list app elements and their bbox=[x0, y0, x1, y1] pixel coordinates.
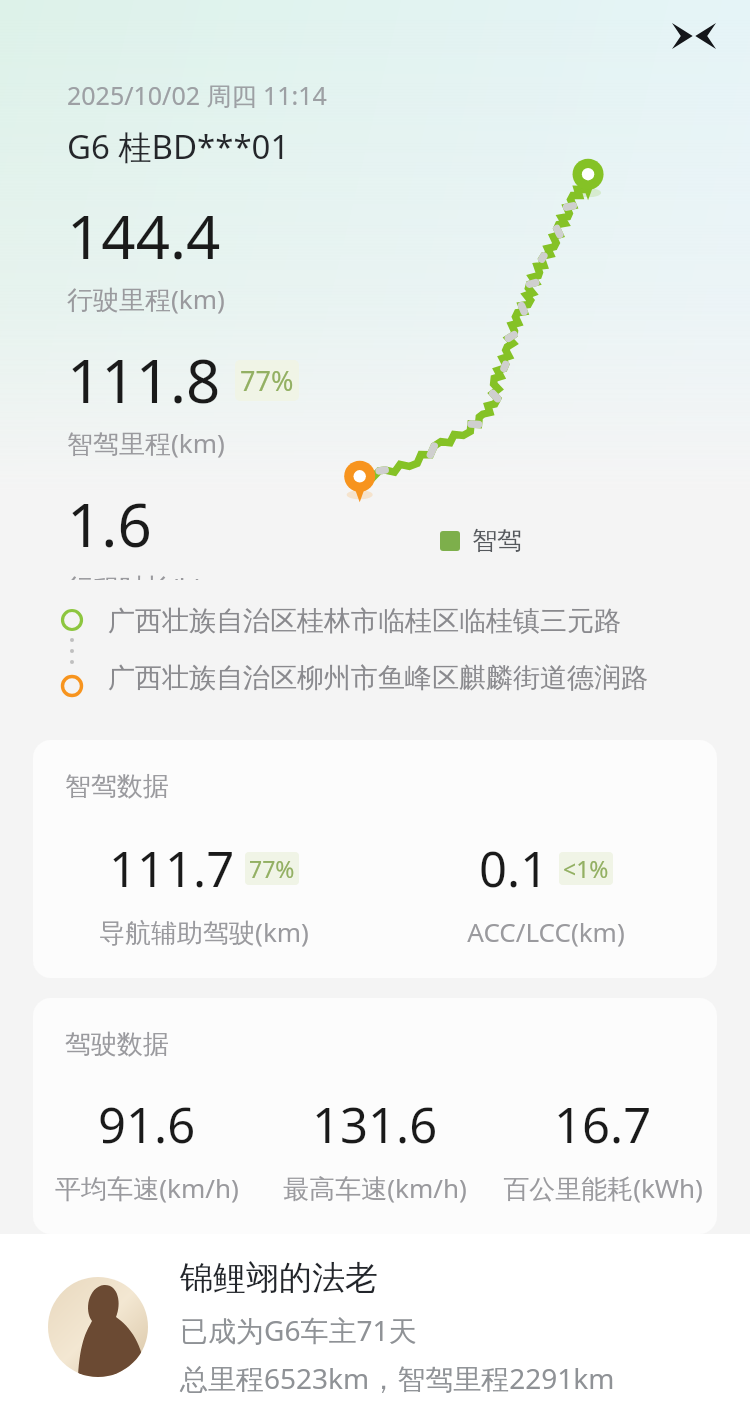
staticText: ACC/LCC(km) bbox=[467, 914, 625, 949]
staticText: 77% bbox=[240, 362, 294, 399]
button[interactable]: XPeng logo bbox=[666, 8, 722, 64]
staticText: 16.7 bbox=[554, 1091, 652, 1158]
button[interactable]: 驾驶数据 bbox=[33, 998, 717, 1234]
button[interactable]: 锦鲤翊的法老 bbox=[0, 1234, 750, 1420]
staticText: 总里程6523km，智驾里程2291km bbox=[180, 1359, 615, 1397]
staticText: 行驶里程(km) bbox=[67, 281, 225, 317]
staticText: 导航辅助驾驶(km) bbox=[99, 914, 309, 950]
staticText: 131.6 bbox=[312, 1091, 438, 1158]
staticText: 百公里能耗(kWh) bbox=[503, 1170, 703, 1206]
staticText: <1% bbox=[563, 853, 609, 884]
staticText: 1.6 bbox=[67, 483, 152, 565]
staticText: 锦鲤翊的法老 bbox=[180, 1257, 378, 1299]
staticText: 最高车速(km/h) bbox=[283, 1170, 467, 1206]
staticText: 广西壮族自治区桂林市临桂区临桂镇三元路 bbox=[108, 604, 621, 638]
staticText: 77% bbox=[249, 853, 295, 884]
staticText: 智驾数据 bbox=[65, 770, 169, 803]
button[interactable]: 智驾数据 bbox=[33, 740, 717, 978]
staticText: G6 桂BD***01 bbox=[67, 124, 290, 169]
staticText: 111.7 bbox=[109, 835, 235, 902]
staticText: 0.1 bbox=[479, 835, 549, 902]
staticText: 行程时长(h) bbox=[67, 569, 203, 580]
staticText: 144.4 bbox=[67, 195, 221, 277]
staticText: 91.6 bbox=[98, 1091, 196, 1158]
staticText: 智驾里程(km) bbox=[67, 425, 225, 461]
staticText: 2025/10/02 周四 11:14 bbox=[67, 78, 327, 112]
staticText: 平均车速(km/h) bbox=[55, 1170, 239, 1206]
staticText: 驾驶数据 bbox=[65, 1028, 169, 1061]
staticText: 已成为G6车主71天 bbox=[180, 1311, 417, 1349]
staticText: 广西壮族自治区柳州市鱼峰区麒麟街道德润路 bbox=[108, 661, 648, 695]
staticText: 111.8 bbox=[67, 339, 221, 421]
staticText: 智驾 bbox=[472, 525, 522, 556]
